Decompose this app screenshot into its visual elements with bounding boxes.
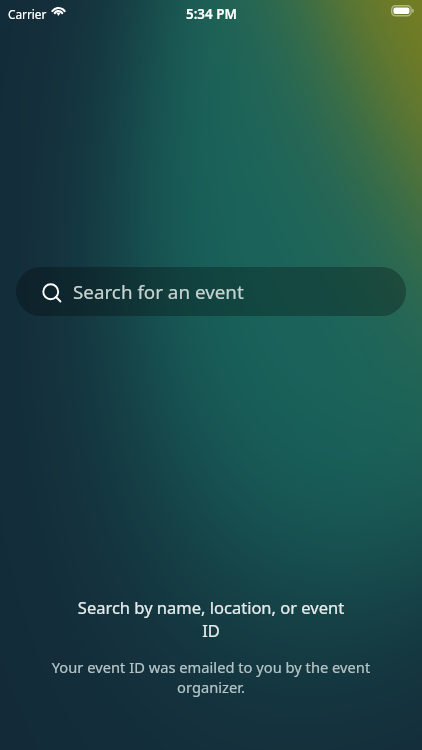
- button[interactable]: Search for an event: [16, 267, 406, 316]
- staticText: 5:34 PM: [186, 5, 237, 23]
- staticText: Search for an event: [73, 279, 244, 305]
- staticText: Carrier: [8, 6, 47, 22]
- staticText: Your event ID was emailed to you by the …: [44, 657, 378, 697]
- staticText: Search by name, location, or event ID: [70, 596, 352, 642]
